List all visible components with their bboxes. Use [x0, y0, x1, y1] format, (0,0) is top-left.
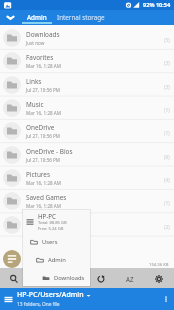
- staticText: Admin: [48, 256, 66, 264]
- button[interactable]: Saved Games: [0, 188, 174, 211]
- button[interactable]: More options: [158, 288, 174, 310]
- button[interactable]: Menu: [0, 288, 17, 310]
- staticText: Free: 5.24 GB: [38, 226, 64, 232]
- button[interactable]: Expand drawer: [0, 10, 21, 25]
- staticText: Just now: [26, 40, 45, 46]
- staticText: (1): [164, 107, 170, 114]
- staticText: Jul 27, 10:56 PM: [26, 157, 61, 163]
- button[interactable]: Pictures: [0, 165, 174, 188]
- staticText: 92% 10:54: [143, 1, 171, 9]
- staticText: Jul 27, 10:56 PM: [26, 87, 61, 93]
- button[interactable]: Settings: [149, 268, 169, 289]
- button[interactable]: Admin: [36, 251, 90, 269]
- staticText: HP-PC/Users/Admin: [17, 290, 84, 300]
- staticText: (3): [164, 84, 170, 91]
- staticText: Mar 16, 1:28 AM: [26, 180, 61, 186]
- button[interactable]: Favorites: [0, 48, 174, 71]
- staticText: Jul 27, 10:56 PM: [26, 133, 61, 139]
- staticText: HP-PC: [38, 212, 56, 220]
- button[interactable]: Users: [30, 233, 90, 251]
- button[interactable]: Downloads: [42, 269, 90, 286]
- button[interactable]: HP-PC: [26, 210, 90, 233]
- button[interactable]: Admin: [21, 10, 52, 25]
- staticText: (5): [164, 37, 170, 44]
- staticText: Total: 88.85 GB: [38, 220, 67, 226]
- button[interactable]: Music: [0, 95, 174, 118]
- staticText: (4): [164, 177, 170, 184]
- staticText: (2): [164, 224, 170, 231]
- staticText: OneDrive - Bios: [26, 147, 73, 156]
- staticText: Links: [26, 77, 42, 86]
- staticText: Favorites: [26, 53, 54, 62]
- staticText: 154.36 KB: [149, 262, 169, 268]
- staticText: Music: [26, 100, 44, 109]
- button[interactable]: OneDrive - Bios: [0, 142, 174, 165]
- staticText: OneDrive: [26, 123, 55, 132]
- staticText: (3): [164, 60, 170, 67]
- staticText: (1): [164, 130, 170, 137]
- staticText: Internal storage: [57, 13, 105, 22]
- staticText: (1): [164, 200, 170, 207]
- staticText: 13 folders, One file: [17, 301, 60, 308]
- staticText: Mar 16, 1:28 AM: [26, 110, 61, 116]
- staticText: Mar 16, 1:28 AM: [26, 63, 61, 69]
- staticText: Downloads: [26, 30, 60, 39]
- button[interactable]: AZ: [120, 268, 140, 289]
- button[interactable]: Searches: [0, 212, 174, 235]
- staticText: Mar 16, 1:28 AM: [26, 227, 61, 233]
- staticText: Admin: [27, 13, 47, 22]
- staticText: Mar 16, 1:28 AM: [26, 203, 61, 209]
- button[interactable]: Search: [4, 268, 24, 289]
- button[interactable]: Sort order: [3, 250, 21, 268]
- staticText: Users: [42, 238, 58, 246]
- button[interactable]: Links: [0, 72, 174, 95]
- button[interactable]: Downloads: [0, 25, 174, 48]
- staticText: AZ: [126, 275, 134, 283]
- staticText: Pictures: [26, 170, 51, 179]
- button[interactable]: Internal storage: [52, 10, 110, 25]
- button[interactable]: Refresh: [91, 268, 111, 289]
- staticText: (6): [164, 154, 170, 161]
- staticText: Downloads: [54, 274, 85, 282]
- staticText: Saved Games: [26, 193, 67, 202]
- button[interactable]: OneDrive: [0, 118, 174, 141]
- staticText: Searches: [26, 217, 53, 226]
